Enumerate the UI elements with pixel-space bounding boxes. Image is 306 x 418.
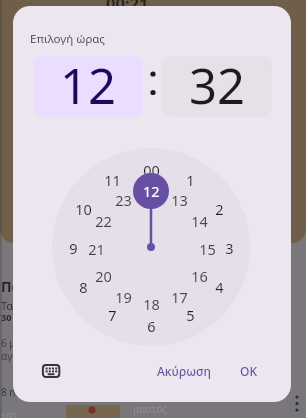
staticText: 8 min [1,385,28,399]
staticText: 100 [1,410,17,418]
staticText: 14 [191,211,208,227]
staticText: 6 [147,316,156,334]
staticText: 13 [171,190,188,206]
staticText: 3 [225,238,234,256]
staticText: 12 [143,181,160,201]
staticText: 12 [60,56,117,113]
staticText: 30 λ [1,311,19,323]
staticText: 22 [95,211,112,227]
staticText: 00:21 [106,0,149,14]
staticText: 4 [215,277,224,295]
staticText: 17 [171,287,188,303]
staticText: 1 [186,170,195,188]
staticText: 18 [143,294,160,310]
button[interactable]: 12 [33,56,143,117]
button[interactable]: OK [228,356,268,386]
staticText: 9 [69,238,78,256]
staticText: 32 [189,56,246,113]
staticText: 5 [186,305,195,323]
staticText: 16 [191,266,208,282]
button[interactable]: 32 [162,56,272,117]
staticText: 21 [88,239,105,255]
staticText: Ακύρωση [157,363,211,379]
button[interactable]: 12 [133,173,169,209]
staticText: 15 [199,239,216,255]
staticText: 23 [115,190,132,206]
staticText: Ταχ [1,298,20,313]
staticText: 2 [215,199,224,217]
staticText: Πα [1,277,21,296]
staticText: 11 [104,170,121,188]
staticText: αγα [1,349,19,363]
staticText: μαστός [133,402,168,416]
staticText: 7 [108,305,117,323]
button[interactable] [39,359,63,383]
staticText: 10 [75,199,92,217]
button[interactable]: Ακύρωση [148,356,220,386]
staticText: OK [240,363,257,379]
staticText: 6 με [1,336,21,350]
staticText: 20 [95,266,112,282]
staticText: 19 [115,287,132,303]
staticText: 8 [79,277,88,295]
staticText: Επιλογή ώρας [30,31,105,47]
staticText: 00 [143,160,160,178]
